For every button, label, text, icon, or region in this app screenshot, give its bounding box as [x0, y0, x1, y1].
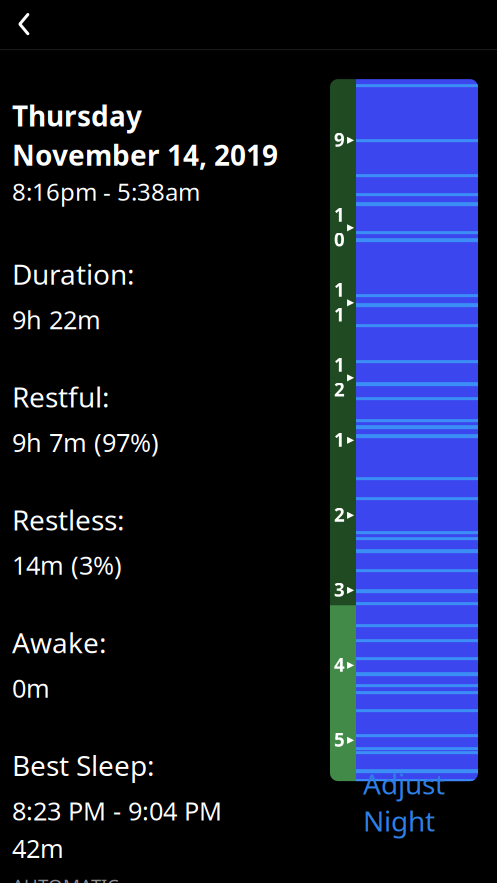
staticText: 2: [334, 502, 345, 527]
staticText: ▶: [347, 509, 354, 520]
staticText: Awake:: [12, 624, 107, 661]
staticText: ▶: [347, 372, 354, 382]
staticText: ▶: [347, 434, 354, 445]
staticText: 42m: [12, 831, 64, 865]
staticText: 10: [334, 202, 345, 252]
staticText: 1: [334, 427, 345, 452]
staticText: 4: [334, 652, 345, 677]
staticText: 9h 22m: [12, 302, 101, 336]
staticText: 8:23 PM - 9:04 PM: [12, 794, 222, 827]
staticText: AUTOMATIC: [12, 873, 119, 883]
staticText: Duration:: [12, 255, 135, 292]
staticText: Best Sleep:: [12, 747, 155, 784]
staticText: 3: [334, 577, 345, 602]
staticText: Thursday: [12, 97, 142, 134]
staticText: November 14, 2019: [12, 136, 278, 173]
staticText: ▶: [347, 134, 354, 145]
staticText: 9h 7m (97%): [12, 425, 159, 459]
staticText: ▶: [347, 297, 354, 307]
staticText: 9: [334, 127, 345, 152]
staticText: ▶: [347, 734, 354, 745]
staticText: 8:16pm - 5:38am: [12, 175, 200, 207]
staticText: Restful:: [12, 378, 110, 415]
staticText: Adjust Night: [363, 765, 445, 839]
staticText: 12: [334, 352, 345, 402]
staticText: 11: [334, 277, 345, 327]
staticText: ▶: [347, 222, 354, 232]
button[interactable]: Back: [2, 2, 46, 46]
staticText: 5: [334, 727, 345, 752]
staticText: ▶: [347, 659, 354, 670]
staticText: 0m: [12, 671, 50, 705]
button[interactable]: Adjust Night: [330, 781, 478, 823]
staticText: Restless:: [12, 501, 125, 538]
staticText: 14m (3%): [12, 548, 122, 582]
staticText: ▶: [347, 584, 354, 595]
